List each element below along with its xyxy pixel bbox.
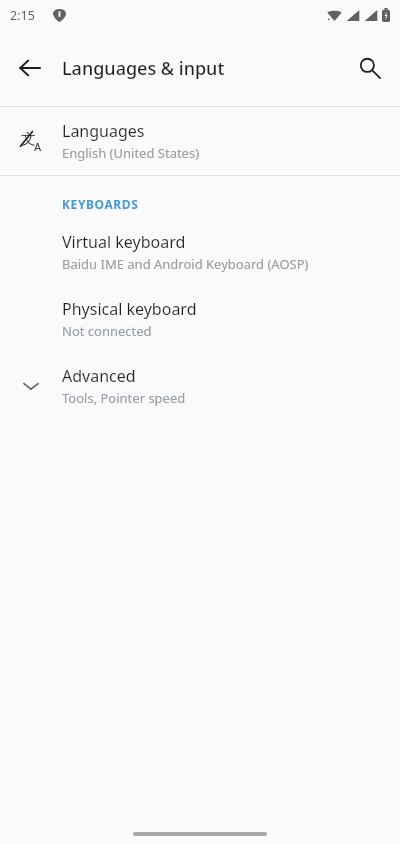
- staticText: Not connected: [62, 322, 152, 340]
- staticText: Languages: [62, 120, 145, 142]
- staticText: 2:15: [10, 7, 35, 24]
- staticText: Baidu IME and Android Keyboard (AOSP): [62, 255, 309, 273]
- button[interactable]: Virtual keyboard: [0, 218, 400, 285]
- staticText: Advanced: [62, 365, 136, 387]
- button[interactable]: Physical keyboard: [0, 285, 400, 352]
- staticText: A: [34, 139, 42, 154]
- staticText: Languages & input: [62, 56, 225, 81]
- staticText: Virtual keyboard: [62, 231, 186, 253]
- button[interactable]: Advanced: [0, 352, 400, 419]
- staticText: 文: [21, 130, 36, 149]
- staticText: English (United States): [62, 144, 200, 162]
- button[interactable]: Back: [6, 44, 54, 92]
- staticText: KEYBOARDS: [62, 196, 139, 212]
- button[interactable]: 文: [0, 107, 400, 175]
- button[interactable]: Search: [346, 44, 394, 92]
- staticText: Physical keyboard: [62, 298, 197, 320]
- staticText: Tools, Pointer speed: [62, 389, 186, 407]
